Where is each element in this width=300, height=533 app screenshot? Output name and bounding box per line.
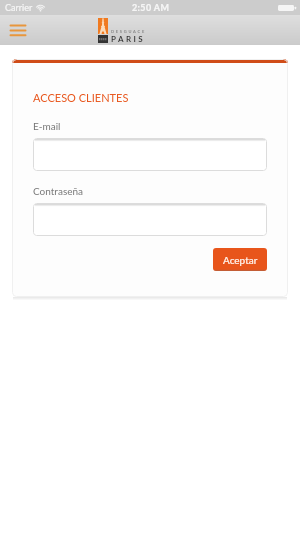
staticText: Carrier: [5, 2, 33, 13]
staticText: Aceptar: [223, 254, 258, 266]
button[interactable]: Aceptar: [213, 248, 267, 271]
staticText: PARIS: [111, 34, 146, 44]
button[interactable]: [33, 203, 267, 236]
staticText: E-mail: [33, 120, 61, 132]
staticText: 2:50 AM: [132, 2, 170, 13]
button[interactable]: Open navigation menu: [0, 18, 28, 42]
staticText: ACCESO CLIENTES: [33, 91, 129, 104]
staticText: DESGUACE: [111, 29, 146, 34]
staticText: Contraseña: [33, 185, 84, 197]
button[interactable]: [33, 138, 267, 171]
